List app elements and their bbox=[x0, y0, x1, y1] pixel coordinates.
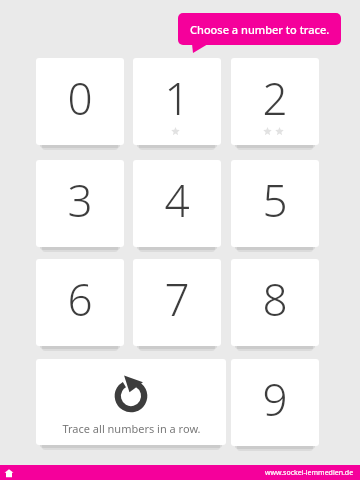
staticText: 4 bbox=[164, 170, 190, 230]
button[interactable]: 9 bbox=[231, 359, 319, 446]
button[interactable]: 5 bbox=[231, 160, 319, 247]
staticText: 7 bbox=[164, 269, 190, 329]
staticText: 3 bbox=[67, 170, 93, 230]
button[interactable]: 2 bbox=[231, 58, 319, 145]
staticText: Choose a number to trace. bbox=[190, 22, 330, 37]
button[interactable]: 4 bbox=[133, 160, 221, 247]
staticText: 5 bbox=[262, 170, 288, 230]
button[interactable]: 6 bbox=[36, 259, 124, 346]
staticText: 8 bbox=[262, 269, 288, 329]
button[interactable]: Choose a number to trace. bbox=[178, 13, 341, 53]
button[interactable]: 7 bbox=[133, 259, 221, 346]
button[interactable]: 8 bbox=[231, 259, 319, 346]
staticText: 1 bbox=[164, 68, 190, 128]
staticText: Trace all numbers in a row. bbox=[62, 421, 201, 436]
staticText: 9 bbox=[262, 369, 288, 429]
staticText: 2 bbox=[262, 68, 288, 128]
button[interactable]: 3 bbox=[36, 160, 124, 247]
button[interactable]: Trace all numbers in a row bbox=[36, 359, 226, 445]
staticText: 6 bbox=[67, 269, 93, 329]
staticText: www.sockel-lemmedien.de bbox=[265, 468, 354, 478]
button[interactable]: 1 bbox=[133, 58, 221, 145]
button[interactable]: Home bbox=[4, 468, 14, 478]
staticText: 0 bbox=[67, 68, 93, 128]
button[interactable]: 0 bbox=[36, 58, 124, 145]
